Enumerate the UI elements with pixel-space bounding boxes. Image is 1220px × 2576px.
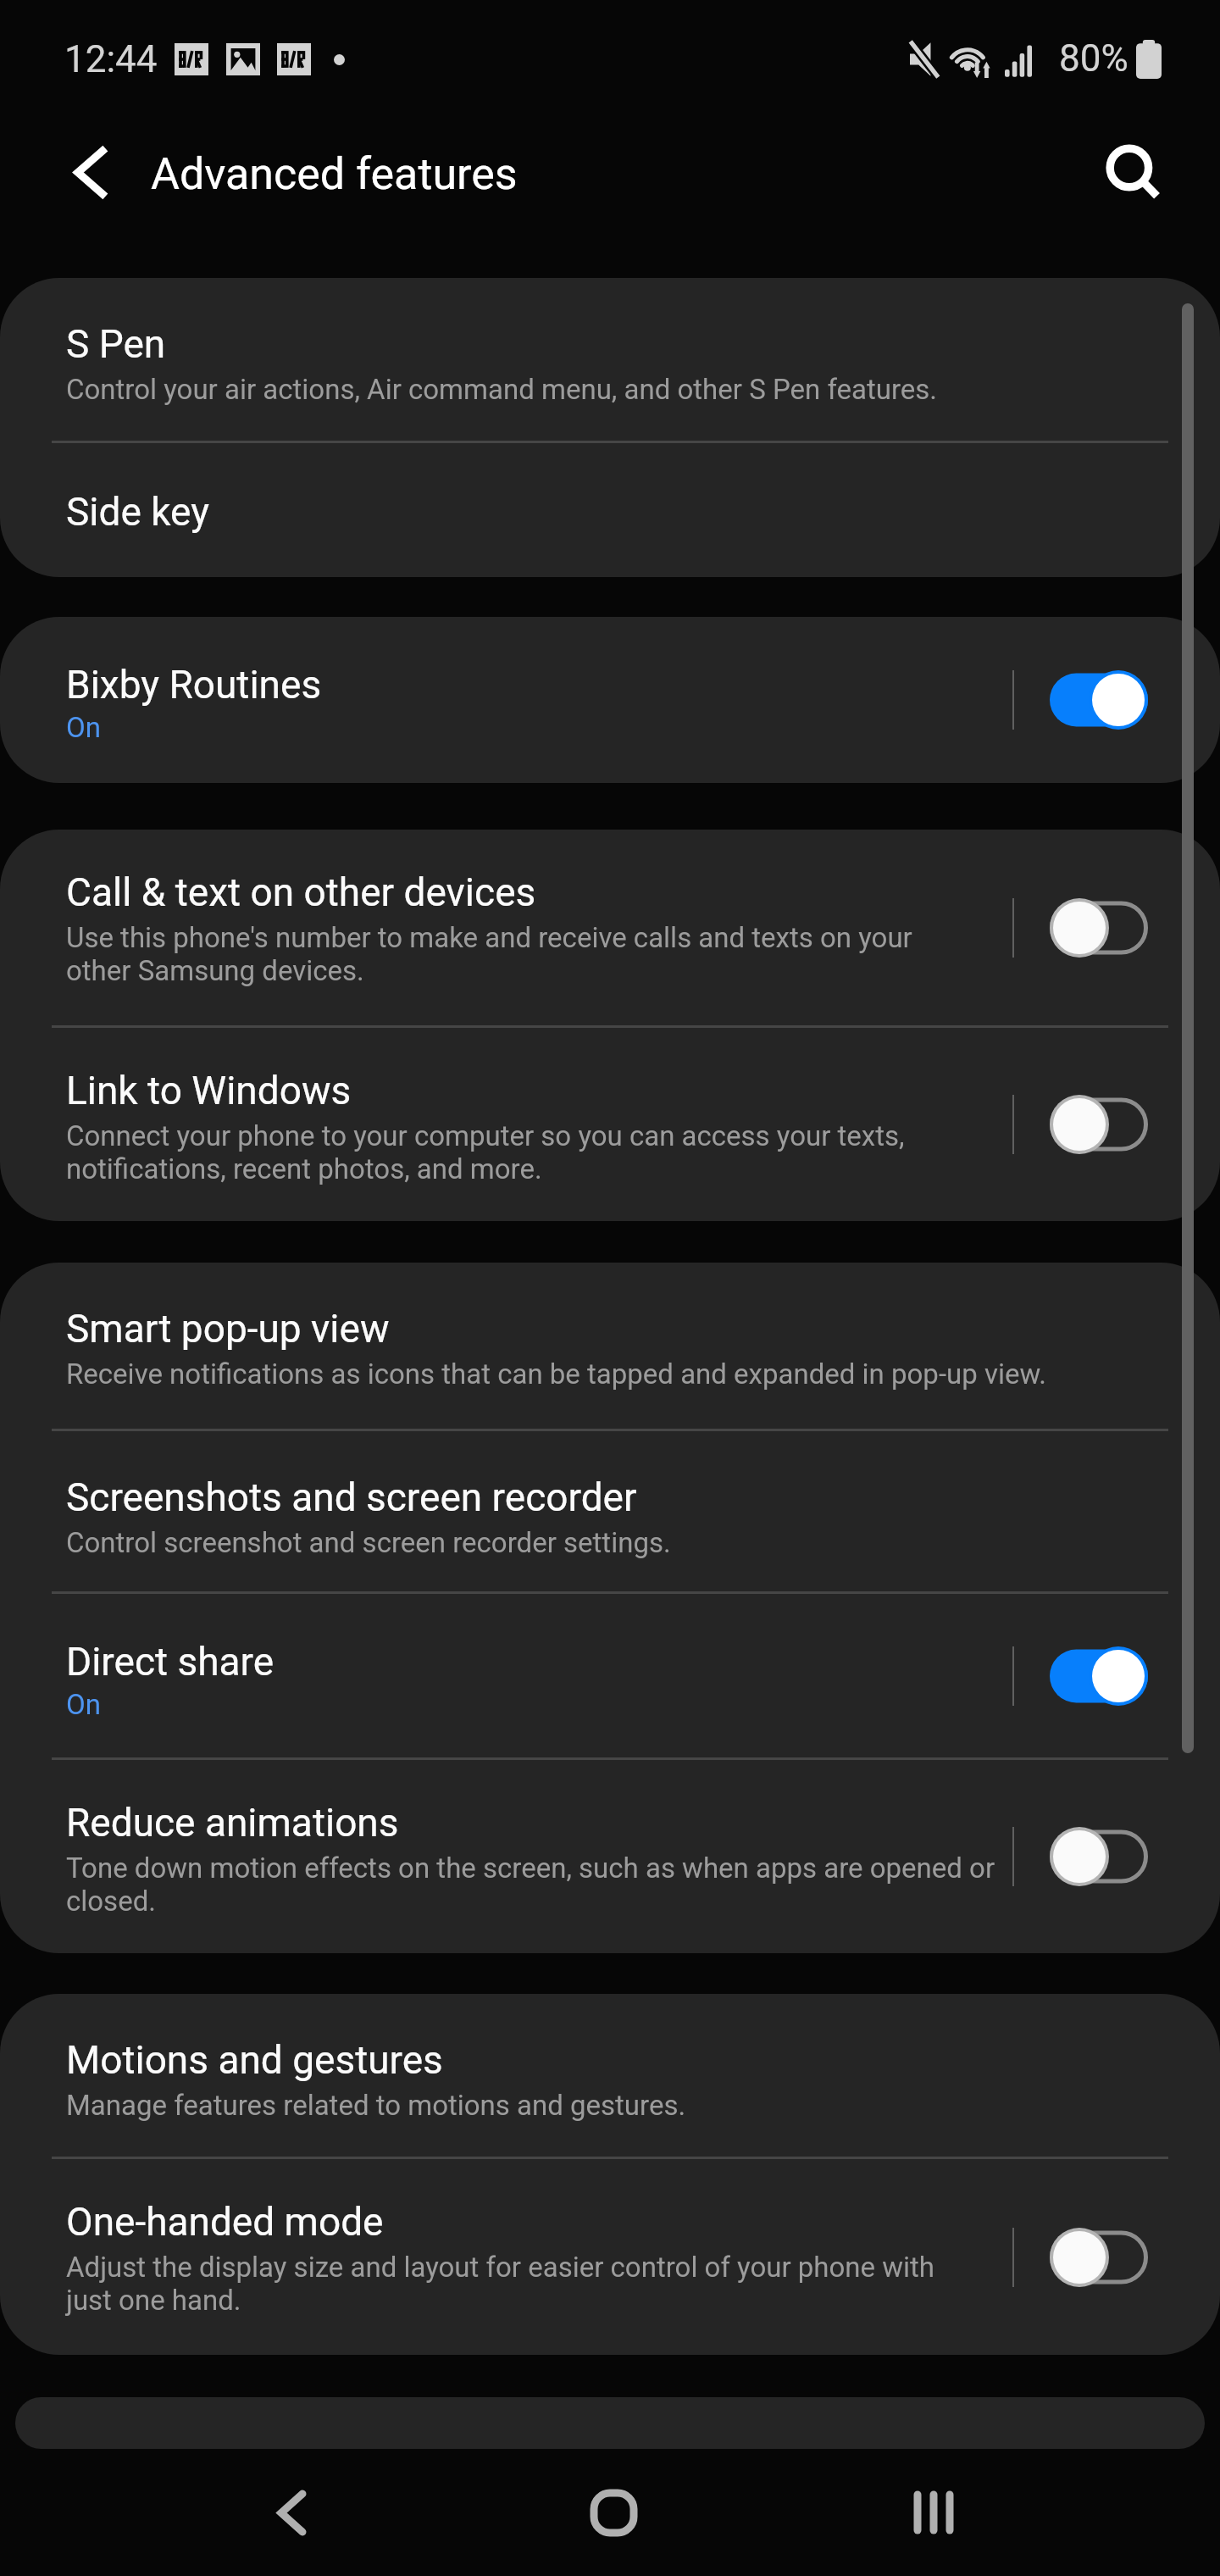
button[interactable]: Direct share (1049, 1638, 1149, 1714)
staticText: 12:44 (64, 37, 158, 81)
staticText: Bixby Routines (66, 662, 322, 708)
button[interactable]: S Pen (0, 278, 1220, 441)
button[interactable]: Back (224, 2449, 359, 2576)
button[interactable]: One-handed mode (1049, 2219, 1149, 2296)
staticText: Side key (66, 489, 209, 535)
staticText: Call & text on other devices (66, 869, 536, 915)
staticText: Tone down motion effects on the screen, … (66, 1851, 1006, 1918)
staticText: Adjust the display size and layout for e… (66, 2251, 966, 2317)
button[interactable]: Motions and gestures (0, 1994, 1220, 2157)
button[interactable]: Direct share (0, 1594, 1220, 1757)
button[interactable]: Call & text on other devices (1049, 890, 1149, 966)
staticText: S Pen (66, 321, 166, 367)
staticText: Control your air actions, Air command me… (66, 373, 938, 406)
staticText: Link to Windows (66, 1068, 352, 1113)
button[interactable]: Recent apps (866, 2449, 1001, 2576)
button[interactable]: Reduce animations (0, 1760, 1220, 1953)
button[interactable]: Bixby Routines (0, 617, 1220, 783)
button[interactable]: Navigate up (47, 130, 131, 214)
staticText: Direct share (66, 1639, 274, 1685)
staticText: Manage features related to motions and g… (66, 2089, 686, 2122)
button[interactable]: Call & text on other devices (0, 830, 1220, 1025)
staticText: Motions and gestures (66, 2037, 443, 2083)
button[interactable]: Reduce animations (1049, 1818, 1149, 1895)
staticText: Connect your phone to your computer so y… (66, 1119, 966, 1185)
button[interactable]: Home (546, 2449, 681, 2576)
staticText: Receive notifications as icons that can … (66, 1357, 1046, 1391)
button[interactable]: Smart pop-up view (0, 1263, 1220, 1429)
staticText: On (66, 711, 101, 744)
button[interactable]: Link to Windows (0, 1028, 1220, 1221)
staticText: Reduce animations (66, 1800, 399, 1846)
staticText: On (66, 1688, 101, 1721)
button[interactable]: Bixby Routines (1049, 662, 1149, 738)
staticText: One-handed mode (66, 2199, 384, 2245)
button[interactable]: Screenshots and screen recorder (0, 1431, 1220, 1591)
staticText: Use this phone's number to make and rece… (66, 921, 966, 987)
staticText: Control screenshot and screen recorder s… (66, 1526, 671, 1559)
staticText: Screenshots and screen recorder (66, 1474, 637, 1520)
button[interactable]: Side key (0, 443, 1220, 577)
button[interactable]: One-handed mode (0, 2159, 1220, 2355)
staticText: Advanced features (151, 148, 518, 200)
button[interactable]: Link to Windows (1049, 1086, 1149, 1163)
button[interactable]: Search (1091, 133, 1176, 218)
staticText: Smart pop-up view (66, 1306, 390, 1352)
staticText: 80% (1059, 36, 1128, 80)
